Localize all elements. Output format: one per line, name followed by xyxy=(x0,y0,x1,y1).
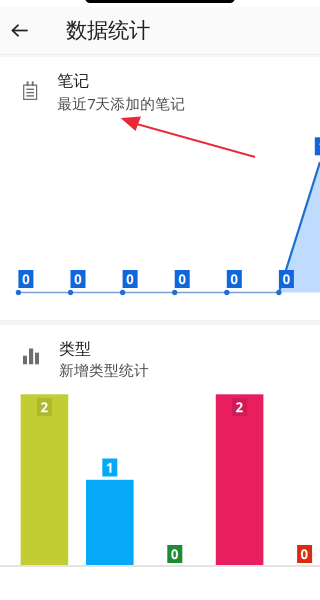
staticText: 2 xyxy=(40,398,48,416)
staticText: 类型 xyxy=(59,339,91,359)
staticText: 0 xyxy=(22,270,30,288)
button[interactable]: Back xyxy=(0,7,40,54)
staticText: 0 xyxy=(74,270,82,288)
staticText: 2 xyxy=(236,398,244,416)
staticText: 1 xyxy=(106,459,114,476)
staticText: 0 xyxy=(301,545,309,563)
staticText: 新增类型统计 xyxy=(59,362,149,380)
staticText: 0 xyxy=(126,270,134,288)
staticText: 0 xyxy=(282,270,290,288)
staticText: 笔记 xyxy=(57,71,89,91)
staticText: 0 xyxy=(171,545,179,563)
staticText: 0 xyxy=(178,270,186,288)
staticText: 最近7天添加的笔记 xyxy=(57,94,185,113)
staticText: 1 xyxy=(318,137,320,155)
staticText: 数据统计 xyxy=(66,17,150,44)
staticText: 0 xyxy=(230,270,238,288)
